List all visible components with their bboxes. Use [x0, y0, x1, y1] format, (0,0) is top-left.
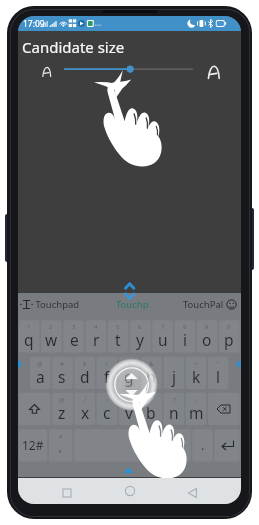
button[interactable]: $	[74, 357, 96, 389]
staticText: ;	[128, 396, 130, 404]
staticText: @	[59, 396, 65, 404]
button[interactable]: -	[163, 357, 185, 389]
button[interactable]: 9	[196, 320, 218, 352]
button[interactable]: 12#	[18, 429, 48, 461]
staticText: f	[104, 366, 110, 387]
staticText: #	[60, 360, 64, 368]
staticText: v	[125, 402, 133, 423]
button[interactable]: Touchpad	[19, 298, 81, 311]
staticText: TouchPal	[183, 298, 226, 311]
button[interactable]: :	[96, 393, 118, 425]
button[interactable]: @	[29, 357, 51, 389]
staticText: $	[83, 360, 87, 368]
staticText: 17:09	[23, 18, 45, 30]
button[interactable]: /	[74, 393, 96, 425]
staticText: .	[201, 437, 205, 453]
button[interactable]: (	[96, 357, 118, 389]
button[interactable]: a	[48, 429, 73, 461]
button[interactable]: Touchp	[116, 298, 149, 311]
staticText: :	[106, 396, 108, 404]
staticText: "	[217, 360, 220, 368]
button[interactable]: 2	[40, 320, 62, 352]
staticText: Candidate size	[22, 37, 125, 57]
staticText: !	[150, 396, 152, 404]
button[interactable]: Candidate size	[18, 31, 241, 61]
staticText: q	[24, 329, 34, 350]
staticText: a	[59, 432, 63, 440]
button[interactable]: @	[51, 393, 73, 425]
staticText: n	[169, 402, 179, 423]
staticText: h	[146, 366, 156, 387]
staticText: 8	[183, 323, 187, 331]
button[interactable]: !	[140, 393, 162, 425]
staticText: z	[58, 402, 66, 423]
staticText: a	[36, 366, 45, 387]
button[interactable]: 1	[18, 320, 40, 352]
staticText: 1	[27, 323, 31, 331]
staticText: ?	[173, 396, 176, 404]
staticText: l	[216, 366, 220, 387]
button[interactable]: 7	[152, 320, 174, 352]
staticText: @	[37, 360, 43, 368]
button[interactable]: 6	[129, 320, 151, 352]
staticText: j	[172, 366, 176, 387]
staticText: )	[128, 360, 130, 368]
staticText: (	[106, 360, 108, 368]
button[interactable]: Back	[178, 478, 208, 504]
staticText: &	[149, 360, 154, 368]
staticText: m	[189, 402, 204, 423]
staticText: r	[93, 329, 100, 350]
button[interactable]: 0	[218, 320, 240, 352]
staticText: 9	[205, 323, 209, 331]
staticText: y	[136, 329, 144, 350]
staticText: w	[45, 329, 58, 350]
button[interactable]: .	[192, 429, 214, 461]
button[interactable]: Recents	[52, 478, 82, 504]
staticText: Touchpad	[33, 298, 80, 311]
staticText: 7	[161, 323, 165, 331]
staticText: Touchp	[116, 298, 149, 311]
button[interactable]: Enter	[214, 429, 241, 461]
staticText: u	[158, 329, 168, 350]
staticText: e	[70, 329, 79, 350]
button[interactable]: Shift	[18, 393, 51, 425]
button[interactable]: 3	[63, 320, 85, 352]
staticText: ,	[59, 441, 62, 455]
button[interactable]: Space	[73, 429, 191, 461]
staticText: ,	[195, 396, 197, 404]
staticText: s	[58, 366, 66, 387]
button[interactable]: 5	[107, 320, 129, 352]
staticText: 2	[49, 323, 53, 331]
staticText: 3	[72, 323, 76, 331]
staticText: i	[183, 329, 187, 350]
staticText: -	[173, 360, 175, 368]
button[interactable]: ,	[185, 393, 207, 425]
staticText: t	[115, 329, 121, 350]
staticText: c	[103, 402, 111, 423]
button[interactable]: )	[118, 357, 140, 389]
staticText: b	[146, 402, 156, 423]
staticText: g	[124, 366, 134, 387]
staticText: 0	[227, 323, 231, 331]
button[interactable]: 8	[174, 320, 196, 352]
button[interactable]: "	[207, 357, 229, 389]
staticText: /	[84, 396, 87, 404]
button[interactable]: +	[185, 357, 207, 389]
button[interactable]: ?	[163, 393, 185, 425]
staticText: k	[192, 366, 201, 387]
button[interactable]: &	[140, 357, 162, 389]
staticText: 4	[94, 323, 98, 331]
button[interactable]: 4	[85, 320, 107, 352]
staticText: p	[224, 329, 234, 350]
button[interactable]: ;	[118, 393, 140, 425]
staticText: o	[202, 329, 212, 350]
button[interactable]: Home	[115, 478, 145, 504]
button[interactable]: TouchPal	[183, 298, 237, 311]
button[interactable]: #	[51, 357, 73, 389]
staticText: 5	[116, 323, 120, 331]
button[interactable]	[58, 64, 198, 78]
staticText: +	[194, 360, 198, 368]
button[interactable]: Backspace	[207, 393, 240, 425]
staticText: d	[80, 366, 90, 387]
staticText: 6	[138, 323, 142, 331]
